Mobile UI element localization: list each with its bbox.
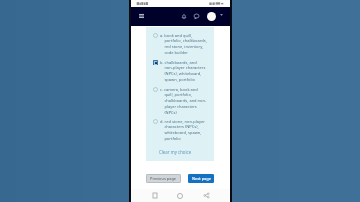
button[interactable]: b. chalkboards, and non-player character…	[153, 60, 211, 83]
button[interactable]: Notifications	[178, 11, 189, 22]
button[interactable]: Menu	[136, 10, 147, 21]
staticText: Previous page	[150, 176, 177, 181]
staticText: a. book and quill, portfolio, chalkboard…	[160, 33, 210, 56]
button[interactable]: Home	[174, 190, 185, 201]
button[interactable]: c. camera, book and quill, portfolio, ch…	[153, 87, 211, 116]
button[interactable]: Back	[149, 190, 160, 201]
button[interactable]: Previous page	[146, 174, 181, 183]
staticText: c. camera, book and quill, portfolio, ch…	[160, 87, 210, 116]
staticText: b. chalkboards, and non-player character…	[160, 60, 210, 83]
button[interactable]: d. red stone, non-player characters (NPC…	[153, 119, 211, 142]
button[interactable]: Messages	[191, 11, 202, 22]
staticText: Clear my choice	[159, 149, 192, 155]
staticText: Next page	[192, 176, 211, 181]
button[interactable]: a. book and quill, portfolio, chalkboard…	[153, 33, 211, 56]
button[interactable]: Account menu	[218, 11, 225, 18]
button[interactable]: Next page	[188, 174, 214, 183]
staticText: d. red stone, non-player characters (NPC…	[160, 119, 210, 142]
button[interactable]: Clear my choice	[159, 149, 192, 155]
button[interactable]: Share	[201, 190, 212, 201]
button[interactable]: Profile	[207, 12, 216, 21]
